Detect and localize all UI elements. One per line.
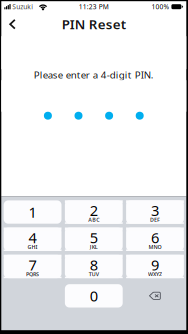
staticText: DEF <box>150 216 160 223</box>
button[interactable]: 1 <box>4 200 61 224</box>
staticText: 1 <box>29 202 37 222</box>
staticText: 7 <box>29 255 37 274</box>
staticText: JKL <box>90 243 98 251</box>
staticText: 0 <box>90 286 98 306</box>
staticText: Please enter a 4-digit PIN. <box>34 68 154 81</box>
staticText: WXYZ <box>148 271 162 278</box>
button[interactable]: 7 <box>4 255 61 278</box>
button[interactable]: 4 <box>4 228 61 251</box>
staticText: 100% <box>151 2 169 11</box>
staticText: TUV <box>89 271 99 278</box>
staticText: ABC <box>88 216 99 223</box>
staticText: 9 <box>151 255 159 274</box>
button[interactable]: 3 <box>126 200 184 224</box>
staticText: GHI <box>28 243 38 251</box>
staticText: 2 <box>90 201 98 220</box>
staticText: 3 <box>151 201 159 220</box>
button[interactable]: 5 <box>65 228 123 251</box>
staticText: PIN Reset <box>62 15 126 33</box>
staticText: 4 <box>29 228 37 247</box>
button[interactable]: 2 <box>65 200 123 224</box>
button[interactable]: Delete <box>126 284 184 307</box>
button[interactable]: 9 <box>126 255 184 278</box>
staticText: 6 <box>151 228 159 247</box>
button[interactable]: 8 <box>65 255 123 278</box>
staticText: 8 <box>90 255 98 274</box>
staticText: Suzuki <box>12 2 33 11</box>
button[interactable]: 6 <box>126 228 184 251</box>
staticText: MNO <box>148 243 161 251</box>
staticText: 5 <box>90 228 98 247</box>
button[interactable]: 0 <box>65 284 123 307</box>
button[interactable]: Back <box>3 12 21 36</box>
staticText: PQRS <box>26 271 39 278</box>
staticText: 11:23 PM <box>79 2 109 11</box>
